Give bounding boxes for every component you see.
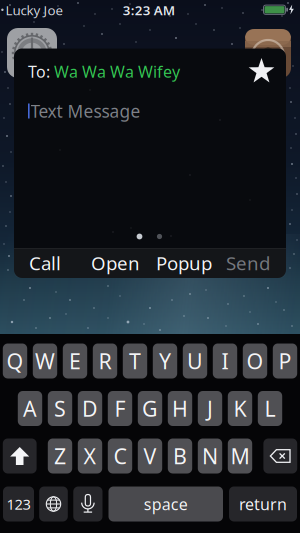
staticText: L [264,394,275,423]
staticText: A [23,394,37,423]
staticText: N [202,442,218,470]
button[interactable]: 123 [3,486,34,521]
staticText: 123 [6,494,30,514]
button[interactable]: X [78,438,102,473]
staticText: P [278,347,291,375]
button[interactable]: A [18,391,42,426]
staticText: Send [226,251,270,275]
staticText: 3:23 AM [123,1,175,19]
staticText: Open [91,251,140,275]
staticText: M [230,442,249,470]
button[interactable]: Dictate [73,486,102,521]
button[interactable]: T [123,343,147,378]
button[interactable]: B [168,438,192,473]
staticText: Q [6,347,23,375]
staticText: Y [159,347,171,375]
button[interactable]: N [198,438,222,473]
button[interactable]: return [229,486,297,521]
button[interactable]: R [93,343,117,378]
button[interactable]: Popup [152,248,216,278]
button[interactable]: F [108,391,132,426]
staticText: D [82,394,98,423]
staticText: S [54,394,66,423]
button[interactable]: J [198,391,222,426]
staticText: H [172,394,188,423]
staticText: return [239,493,287,515]
button[interactable]: Shift [3,438,37,473]
staticText: B [173,442,187,470]
button[interactable]: space [108,486,223,521]
button[interactable]: O [243,343,267,378]
staticText: C [113,442,126,470]
button[interactable]: Y [153,343,177,378]
button[interactable]: M [228,438,252,473]
button[interactable]: Q [3,343,27,378]
staticText: X [83,442,96,470]
staticText: F [114,394,125,423]
staticText: I [221,347,228,375]
staticText: V [143,442,156,470]
button[interactable]: S [48,391,72,426]
button[interactable]: E [63,343,87,378]
button[interactable]: Cydia [245,29,291,78]
button[interactable]: C [108,438,132,473]
staticText: Z [54,442,66,470]
button[interactable]: V [138,438,162,473]
button[interactable]: L [258,391,282,426]
button[interactable]: Settings [7,28,57,78]
button[interactable]: Text Message [14,91,286,131]
staticText: To: [28,61,50,82]
staticText: Call [29,251,61,275]
staticText: K [233,394,246,423]
button[interactable]: H [168,391,192,426]
button[interactable]: I [213,343,237,378]
button[interactable]: Call [13,248,77,278]
button[interactable]: Open [83,248,147,278]
staticText: G [142,394,158,423]
staticText: J [207,394,213,423]
staticText: Wa Wa Wa Wifey [54,61,180,82]
button[interactable]: U [183,343,207,378]
button[interactable]: W [33,343,57,378]
staticText: Lucky Joe [5,1,63,19]
staticText: Popup [156,251,212,275]
button[interactable]: K [228,391,252,426]
staticText: U [187,347,203,375]
staticText: T [129,347,141,375]
button[interactable]: Next keyboard [39,486,68,521]
staticText: E [69,347,81,375]
button[interactable]: Send [216,248,280,278]
staticText: W [35,347,55,375]
button[interactable]: Delete [263,438,297,473]
staticText: space [144,493,188,515]
button[interactable]: G [138,391,162,426]
button[interactable]: P [273,343,297,378]
staticText: Text Message [30,99,140,122]
staticText: O [246,347,263,375]
button[interactable]: Z [48,438,72,473]
staticText: R [98,347,111,375]
button[interactable]: D [78,391,102,426]
